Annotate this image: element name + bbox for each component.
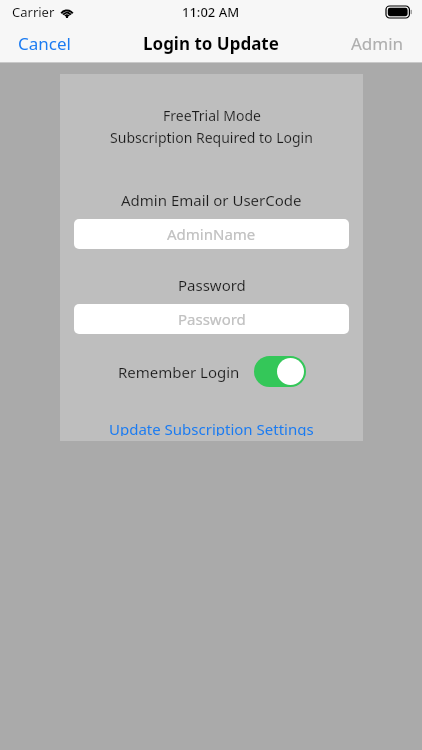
button[interactable]: Update Subscription Settings [97,414,326,441]
staticText: FreeTrial Mode [163,106,261,125]
staticText: Login to Update [143,32,279,55]
button[interactable]: Password [74,304,349,334]
staticText: Update Subscription Settings [109,419,314,436]
staticText: Subscription Required to Login [110,128,313,147]
button[interactable]: AdminName [74,219,349,249]
staticText: 11:02 AM [182,3,240,21]
staticText: Carrier [12,3,55,21]
staticText: Cancel [18,32,71,55]
button[interactable]: Cancel [0,26,89,61]
staticText: AdminName [167,224,256,244]
staticText: Admin [351,32,404,55]
button[interactable]: Remember Login [108,352,316,391]
staticText: Remember Login [118,362,240,382]
staticText: Password [178,275,246,295]
button[interactable]: Remember Login toggle, on [254,356,306,387]
staticText: Admin Email or UserCode [121,190,302,210]
staticText: Password [178,309,246,329]
button[interactable]: Admin [333,26,422,61]
